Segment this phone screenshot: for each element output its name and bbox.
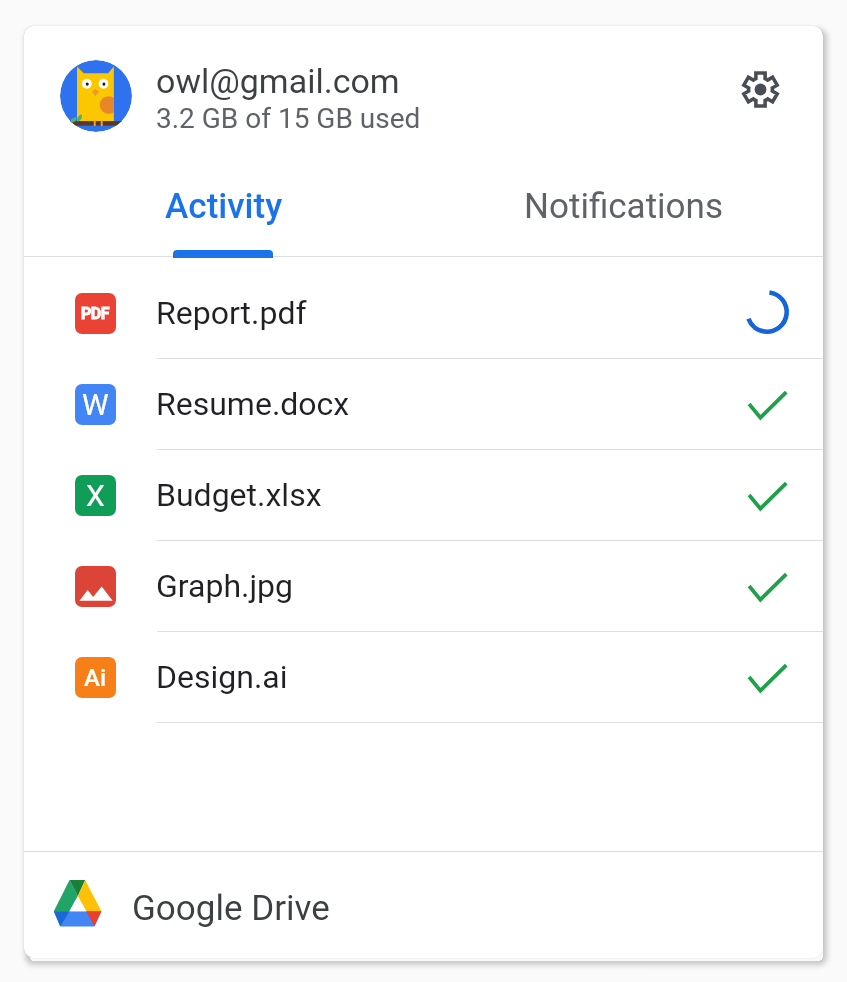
staticText: 3.2 GB of 15 GB used (156, 102, 421, 135)
staticText: Resume.docx (156, 385, 747, 423)
button[interactable]: Settings (730, 59, 790, 119)
staticText: Budget.xlsx (156, 476, 747, 514)
staticText: Google Drive (132, 888, 330, 929)
staticText: Activity (165, 186, 283, 227)
button[interactable]: Google Drive (24, 852, 823, 958)
button[interactable]: W (24, 359, 823, 449)
staticText: Report.pdf (156, 294, 742, 332)
staticText: Design.ai (156, 658, 747, 696)
staticText: Notifications (524, 186, 723, 227)
button[interactable]: Activity (24, 158, 423, 255)
button[interactable]: Ai (24, 632, 823, 722)
button[interactable]: Graph.jpg (24, 541, 823, 631)
button[interactable]: X (24, 450, 823, 540)
staticText: Ai (84, 664, 107, 692)
button[interactable]: Notifications (423, 158, 823, 255)
staticText: W (82, 387, 109, 422)
staticText: owl@gmail.com (156, 61, 400, 101)
button[interactable]: PDF (24, 268, 823, 358)
staticText: Graph.jpg (156, 567, 747, 605)
staticText: PDF (81, 304, 110, 323)
staticText: X (86, 478, 105, 513)
